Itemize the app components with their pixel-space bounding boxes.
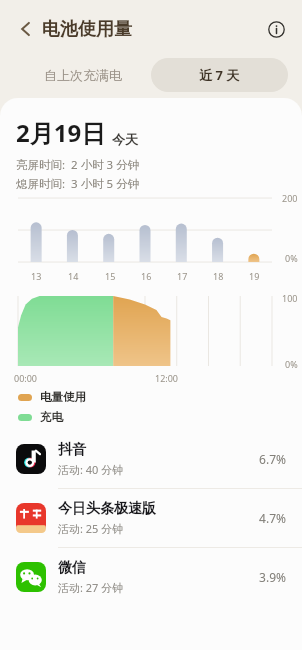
staticText: 0%	[285, 252, 298, 264]
staticText: 电池使用量	[42, 18, 132, 41]
button[interactable]: Information	[260, 13, 292, 45]
staticText: 12:00	[155, 372, 179, 384]
staticText: 活动: 40 分钟	[58, 462, 124, 477]
staticText: 0%	[285, 358, 298, 370]
staticText: 熄屏时间: 3 小时 5 分钟	[16, 176, 140, 192]
staticText: 活动: 25 分钟	[58, 521, 124, 536]
button[interactable]: 微信	[0, 548, 302, 606]
button[interactable]: 抖音	[0, 430, 302, 488]
staticText: 100	[282, 292, 298, 304]
staticText: 15	[105, 270, 116, 282]
staticText: 自上次充满电	[44, 67, 122, 83]
staticText: 电量使用	[40, 390, 86, 404]
staticText: 3.9%	[259, 569, 286, 585]
staticText: 00:00	[14, 372, 38, 384]
staticText: 微信	[58, 559, 86, 577]
staticText: 今日头条极速版	[58, 500, 156, 518]
staticText: 抖音	[58, 441, 86, 459]
staticText: 近 7 天	[199, 66, 240, 84]
staticText: 14	[68, 270, 79, 282]
staticText: 16	[141, 270, 152, 282]
staticText: 17	[177, 270, 188, 282]
staticText: 19	[249, 270, 260, 282]
button[interactable]: 近 7 天	[151, 58, 288, 92]
button[interactable]: 今日头条极速版	[0, 489, 302, 547]
staticText: 活动: 27 分钟	[58, 580, 124, 595]
button[interactable]: Back	[8, 11, 44, 47]
staticText: 今天	[112, 131, 138, 147]
staticText: 亮屏时间: 2 小时 3 分钟	[16, 157, 140, 173]
staticText: 2月19日	[16, 116, 106, 149]
button[interactable]: 自上次充满电	[14, 58, 151, 92]
staticText: 6.7%	[259, 451, 286, 467]
staticText: 13	[31, 270, 42, 282]
staticText: 4.7%	[259, 510, 286, 526]
staticText: 18	[213, 270, 224, 282]
staticText: 充电	[40, 410, 63, 424]
staticText: 200	[282, 192, 298, 204]
